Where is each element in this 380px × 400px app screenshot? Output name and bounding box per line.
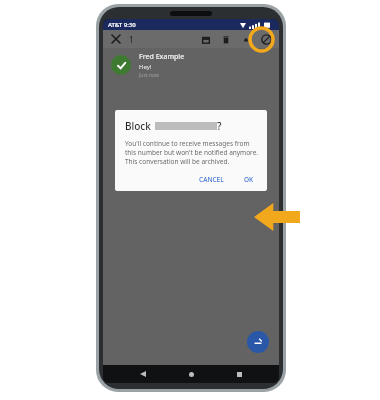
button[interactable]: Recent apps xyxy=(231,366,247,382)
button[interactable]: Archive xyxy=(199,33,212,46)
staticText: You'll continue to receive messages from… xyxy=(125,139,259,166)
staticText: Block xyxy=(125,119,151,133)
button[interactable]: OK xyxy=(239,173,259,186)
button[interactable]: Back xyxy=(135,366,151,382)
other: Pointer to OK button xyxy=(254,203,300,231)
button[interactable]: Mute notifications xyxy=(239,33,252,46)
staticText: CANCEL xyxy=(199,175,224,184)
other: Block icon highlight xyxy=(248,26,275,53)
staticText: Fred Example xyxy=(139,52,185,62)
button[interactable]: Home xyxy=(183,366,199,382)
staticText: AT&T 9:30 xyxy=(108,21,136,29)
staticText: Hey! xyxy=(139,63,152,71)
staticText: Just now xyxy=(139,72,159,79)
staticText: ? xyxy=(217,119,222,133)
button[interactable]: New conversation xyxy=(247,331,269,353)
button[interactable]: Block xyxy=(259,32,273,46)
button[interactable]: CANCEL xyxy=(194,173,229,186)
staticText: OK xyxy=(244,175,254,184)
staticText: 1 xyxy=(129,34,134,45)
button[interactable]: Close selection xyxy=(109,32,123,46)
button[interactable]: Delete xyxy=(219,33,232,46)
button[interactable]: Fred Example xyxy=(103,48,279,82)
